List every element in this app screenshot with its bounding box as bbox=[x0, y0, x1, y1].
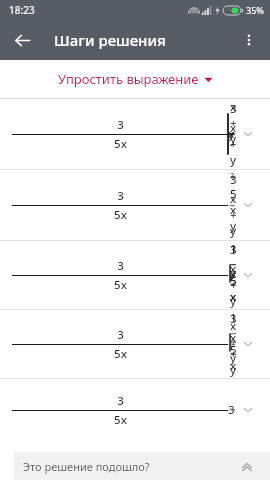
staticText: 3 bbox=[117, 327, 124, 343]
button[interactable]: Это решение подошло? bbox=[14, 452, 270, 480]
button[interactable]: Упростить выражение bbox=[0, 60, 270, 98]
button[interactable]: More options bbox=[233, 24, 265, 56]
staticText: 3 bbox=[117, 258, 124, 274]
staticText: 5x bbox=[114, 412, 127, 428]
staticText: Упростить выражение bbox=[58, 70, 199, 88]
staticText: 3 bbox=[117, 117, 124, 133]
staticText: Шаги решения bbox=[54, 30, 166, 50]
button[interactable]: Back bbox=[6, 24, 38, 56]
staticText: 3 bbox=[117, 393, 124, 409]
button[interactable]: 3 bbox=[0, 379, 270, 441]
button[interactable]: 3 bbox=[0, 241, 270, 309]
staticText: 5x bbox=[114, 136, 127, 152]
staticText: Это решение подошло? bbox=[23, 459, 238, 474]
staticText: 18:23 bbox=[9, 3, 35, 17]
button[interactable]: 3 bbox=[0, 310, 270, 378]
staticText: 5x bbox=[114, 207, 127, 223]
button[interactable]: 3 bbox=[0, 170, 270, 240]
button[interactable]: 3 bbox=[0, 99, 270, 169]
staticText: 5x bbox=[114, 346, 127, 362]
staticText: 5x bbox=[114, 277, 127, 293]
staticText: 35% bbox=[246, 4, 264, 16]
staticText: 3 bbox=[117, 188, 124, 204]
